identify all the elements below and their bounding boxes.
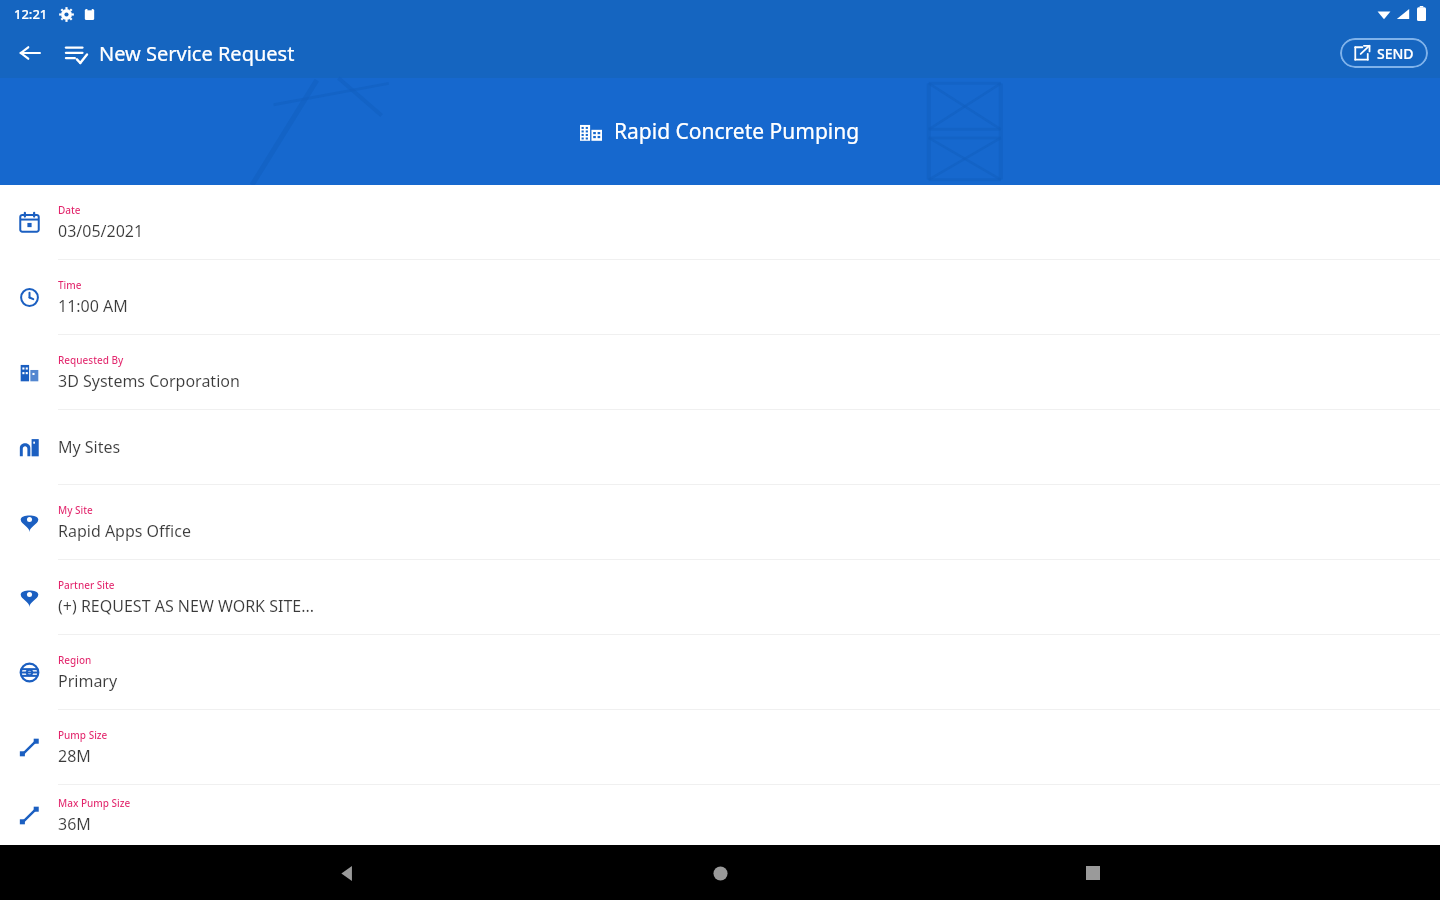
staticText: 28M — [58, 745, 91, 767]
button[interactable]: Home — [694, 847, 746, 899]
button[interactable]: Max Pump Size — [0, 785, 1440, 845]
staticText: Max Pump Size — [58, 796, 131, 810]
button[interactable]: Back — [8, 31, 52, 75]
staticText: Requested By — [58, 353, 124, 367]
button[interactable]: Recent apps — [1067, 847, 1119, 899]
staticText: 12:21 — [14, 5, 48, 23]
button[interactable]: My Sites — [0, 410, 1440, 484]
staticText: Rapid Apps Office — [58, 520, 191, 542]
staticText: Partner Site — [58, 578, 115, 592]
button[interactable]: SEND — [1340, 38, 1428, 68]
staticText: 3D Systems Corporation — [58, 370, 240, 392]
staticText: SEND — [1377, 44, 1414, 63]
button[interactable]: Requested By — [0, 335, 1440, 409]
button[interactable]: Date — [0, 185, 1440, 259]
staticText: New Service Request — [99, 40, 295, 67]
staticText: (+) REQUEST AS NEW WORK SITE... — [58, 595, 315, 617]
button[interactable]: Pump Size — [0, 710, 1440, 784]
staticText: Time — [58, 278, 82, 292]
staticText: 03/05/2021 — [58, 220, 144, 242]
staticText: 11:00 AM — [58, 295, 128, 317]
staticText: Date — [58, 203, 81, 217]
staticText: Rapid Concrete Pumping — [614, 117, 860, 146]
staticText: Region — [58, 653, 92, 667]
button[interactable]: My Site — [0, 485, 1440, 559]
staticText: Pump Size — [58, 728, 108, 742]
staticText: Primary — [58, 670, 118, 692]
button[interactable]: Partner Site — [0, 560, 1440, 634]
staticText: My Sites — [58, 436, 121, 458]
staticText: My Site — [58, 503, 93, 517]
button[interactable]: Region — [0, 635, 1440, 709]
staticText: 36M — [58, 813, 91, 835]
button[interactable]: Back — [321, 847, 373, 899]
button[interactable]: Time — [0, 260, 1440, 334]
